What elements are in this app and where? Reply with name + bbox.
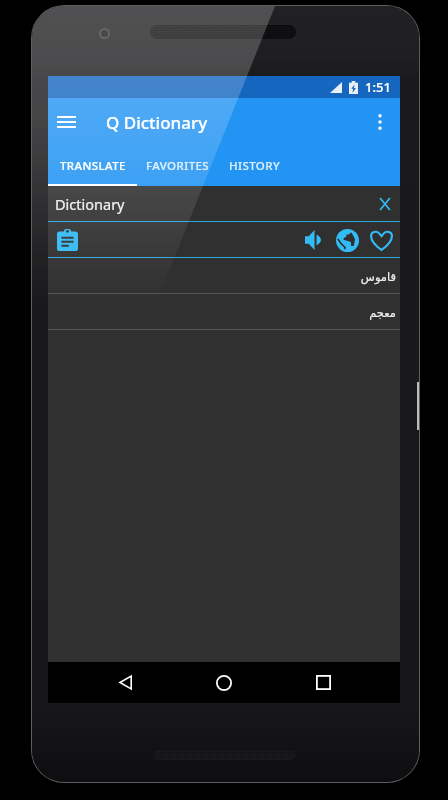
button[interactable]: FAVORITES bbox=[137, 146, 219, 186]
staticText: Dictionary bbox=[55, 194, 125, 214]
button[interactable]: Recent apps bbox=[298, 662, 348, 703]
button[interactable]: قاموس bbox=[48, 258, 400, 294]
staticText: FAVORITES bbox=[146, 158, 210, 174]
staticText: TRANSLATE bbox=[60, 158, 126, 174]
button[interactable]: TRANSLATE bbox=[48, 146, 137, 186]
staticText: 1:51 bbox=[365, 78, 391, 96]
staticText: معجم bbox=[369, 306, 396, 319]
button[interactable]: Back bbox=[100, 662, 150, 703]
staticText: Q Dictionary bbox=[106, 111, 208, 134]
button[interactable]: Clear text bbox=[370, 186, 400, 222]
staticText: HISTORY bbox=[229, 158, 281, 174]
button[interactable]: Add to favorites bbox=[367, 223, 395, 257]
button[interactable]: More options bbox=[362, 98, 398, 146]
button[interactable]: Open navigation drawer bbox=[48, 98, 84, 146]
button[interactable]: Translate online bbox=[333, 223, 361, 257]
button[interactable]: Home bbox=[199, 662, 249, 703]
button[interactable]: Speak bbox=[299, 223, 327, 257]
button[interactable]: Paste from clipboard bbox=[54, 223, 80, 257]
button[interactable]: معجم bbox=[48, 294, 400, 330]
button[interactable]: HISTORY bbox=[219, 146, 291, 186]
staticText: قاموس bbox=[360, 270, 396, 283]
